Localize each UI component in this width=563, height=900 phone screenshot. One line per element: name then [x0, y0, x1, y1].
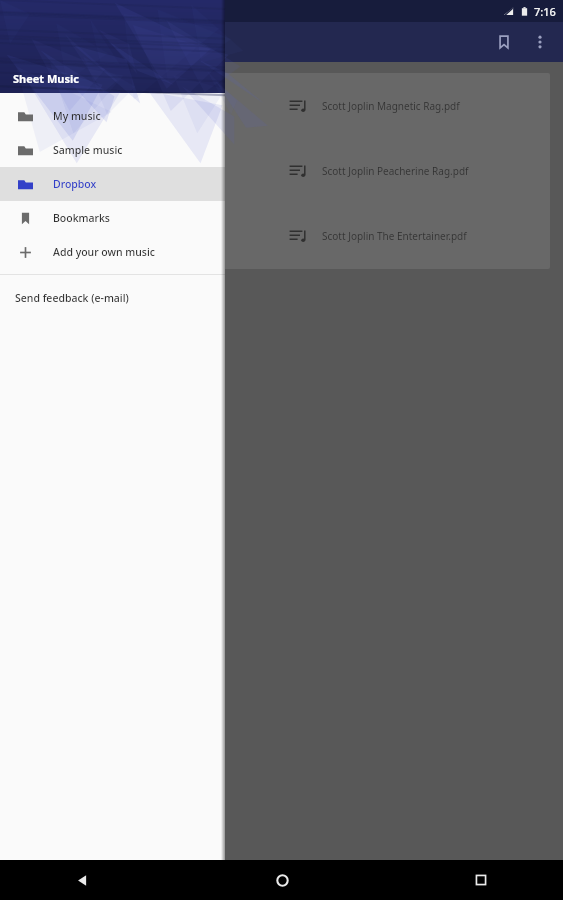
staticText: Add your own music	[53, 245, 155, 259]
button[interactable]: Scott Joplin Elite Syncopation.pdf	[10, 138, 280, 203]
button[interactable]: Add your own music	[0, 235, 225, 269]
button[interactable]: Send feedback (e-mail)	[0, 275, 225, 320]
staticText: Scott Joplin Maple Leaf Rag.pdf	[52, 99, 198, 113]
button[interactable]: Bookmarks	[0, 201, 225, 235]
button[interactable]: Scott Joplin Peacherine Rag.pdf	[280, 138, 550, 203]
button[interactable]: Recent apps	[459, 860, 503, 900]
staticText: Scott Joplin Peacherine Rag.pdf	[322, 164, 469, 178]
button[interactable]: Sample music	[0, 133, 225, 167]
button[interactable]: Dropbox	[0, 167, 225, 201]
staticText: Scott Joplin Elite Syncopation.pdf	[52, 164, 206, 178]
button[interactable]: Home	[260, 860, 304, 900]
button[interactable]: Scott Joplin The Entertainer.pdf	[280, 203, 550, 268]
staticText: Sample music	[53, 143, 123, 157]
staticText: Bookmarks	[53, 211, 110, 225]
button[interactable]: Scott Joplin Solace Rag.pdf	[10, 203, 280, 268]
button[interactable]: My music	[0, 99, 225, 133]
staticText: Scott Joplin The Entertainer.pdf	[322, 229, 467, 243]
button[interactable]: Scott Joplin Magnetic Rag.pdf	[280, 73, 550, 138]
staticText: Sheet Music	[13, 71, 79, 86]
staticText: Dropbox	[53, 177, 97, 191]
button[interactable]: Scott Joplin Maple Leaf Rag.pdf	[10, 73, 280, 138]
button[interactable]: Bookmarks	[485, 23, 523, 61]
staticText: 7:16	[534, 4, 556, 19]
button[interactable]: Back	[60, 860, 104, 900]
staticText: Send feedback (e-mail)	[15, 291, 129, 305]
staticText: My music	[53, 109, 101, 123]
staticText: Scott Joplin Magnetic Rag.pdf	[322, 99, 460, 113]
button[interactable]: More options	[523, 25, 557, 59]
